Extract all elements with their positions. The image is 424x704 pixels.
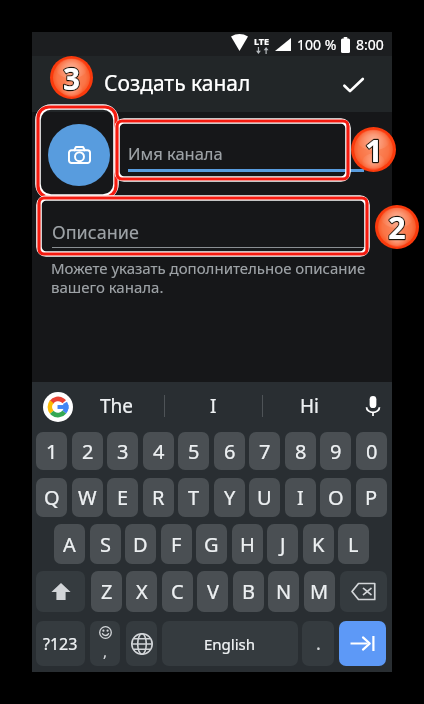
staticText: English — [204, 634, 256, 654]
button[interactable]: 0 — [356, 432, 387, 470]
button[interactable]: Q — [36, 478, 67, 517]
staticText: 100 % — [297, 35, 337, 54]
button[interactable]: J — [267, 524, 298, 564]
button[interactable]: I — [164, 382, 262, 430]
staticText: 3 — [63, 58, 80, 98]
staticText: R — [152, 484, 165, 511]
button[interactable]: I — [285, 478, 316, 517]
staticText: 9 — [330, 438, 342, 465]
staticText: Z — [101, 578, 113, 605]
staticText: O — [328, 484, 344, 511]
button[interactable]: 9 — [320, 432, 351, 470]
staticText: A — [63, 531, 76, 558]
button[interactable]: W — [72, 478, 103, 517]
staticText: V — [207, 578, 219, 605]
staticText: Q — [44, 484, 60, 511]
staticText: B — [242, 578, 255, 605]
staticText: ?123 — [43, 633, 78, 655]
staticText: N — [276, 578, 292, 605]
staticText: 7 — [259, 438, 271, 465]
button[interactable]: C — [162, 571, 193, 612]
button[interactable]: Google search — [40, 389, 76, 425]
button[interactable]: Done — [338, 70, 370, 102]
staticText: M — [310, 578, 329, 605]
button[interactable]: 2 — [72, 432, 103, 470]
staticText: F — [171, 531, 182, 558]
staticText: G — [204, 531, 219, 558]
staticText: L — [348, 531, 359, 558]
staticText: Можете указать дополнительное описание в… — [51, 258, 366, 298]
staticText: D — [133, 531, 148, 558]
button[interactable]: ?123 — [36, 621, 85, 666]
button[interactable]: A — [54, 524, 85, 564]
button[interactable]: L — [338, 524, 369, 564]
staticText: 8:00 — [356, 35, 384, 54]
button[interactable]: 1 — [36, 432, 67, 470]
button[interactable]: 3 — [107, 432, 138, 470]
staticText: Y — [224, 484, 236, 511]
button[interactable]: Описание — [52, 215, 364, 255]
staticText: . — [316, 631, 321, 656]
staticText: 2 — [388, 207, 406, 248]
button[interactable]: Change language — [126, 621, 157, 666]
button[interactable]: Shift — [36, 571, 85, 612]
button[interactable]: Z — [91, 571, 122, 612]
button[interactable]: K — [303, 524, 334, 564]
button[interactable]: Period — [302, 621, 334, 666]
staticText: U — [257, 484, 272, 511]
button[interactable]: B — [233, 571, 264, 612]
staticText: Hi — [300, 393, 319, 419]
staticText: Описание — [52, 220, 139, 245]
button[interactable]: Y — [214, 478, 245, 517]
button[interactable]: D — [125, 524, 156, 564]
button[interactable]: Choose channel photo — [48, 124, 110, 186]
staticText: 4 — [153, 438, 165, 465]
staticText: K — [312, 531, 325, 558]
staticText: T — [188, 484, 200, 511]
staticText: P — [365, 484, 378, 511]
staticText: E — [117, 484, 129, 511]
button[interactable]: Backspace — [340, 571, 387, 612]
staticText: J — [280, 531, 286, 558]
staticText: C — [171, 578, 184, 605]
button[interactable]: Имя канала — [128, 137, 364, 177]
button[interactable]: 6 — [214, 432, 245, 470]
button[interactable]: G — [196, 524, 227, 564]
button[interactable]: O — [320, 478, 351, 517]
button[interactable]: M — [304, 571, 335, 612]
button[interactable]: 5 — [178, 432, 209, 470]
staticText: 5 — [188, 438, 200, 465]
button[interactable]: English — [162, 621, 298, 666]
staticText: 1 — [365, 129, 383, 171]
staticText: X — [136, 578, 148, 605]
staticText: The — [100, 393, 134, 419]
button[interactable]: V — [197, 571, 228, 612]
staticText: Имя канала — [128, 142, 223, 164]
staticText: 2 — [82, 438, 94, 465]
button[interactable]: X — [126, 571, 157, 612]
button[interactable]: R — [143, 478, 174, 517]
button[interactable]: The — [70, 382, 164, 430]
staticText: 1 — [365, 129, 383, 171]
button[interactable]: N — [268, 571, 299, 612]
staticText: 1 — [46, 438, 58, 465]
button[interactable]: Next — [339, 621, 386, 666]
staticText: I — [297, 484, 304, 511]
staticText: I — [210, 393, 217, 419]
button[interactable]: 8 — [285, 432, 316, 470]
button[interactable]: 7 — [249, 432, 280, 470]
button[interactable]: H — [232, 524, 263, 564]
staticText: 0 — [366, 438, 378, 465]
button[interactable]: S — [90, 524, 121, 564]
button[interactable]: Hi — [262, 382, 356, 430]
button[interactable]: Voice input — [359, 382, 387, 430]
button[interactable]: E — [107, 478, 138, 517]
staticText: S — [100, 531, 111, 558]
button[interactable]: T — [178, 478, 209, 517]
staticText: Создать канал — [104, 69, 251, 98]
button[interactable]: Emoji — [90, 621, 120, 666]
button[interactable]: P — [356, 478, 387, 517]
button[interactable]: F — [161, 524, 192, 564]
button[interactable]: 4 — [143, 432, 174, 470]
button[interactable]: U — [249, 478, 280, 517]
